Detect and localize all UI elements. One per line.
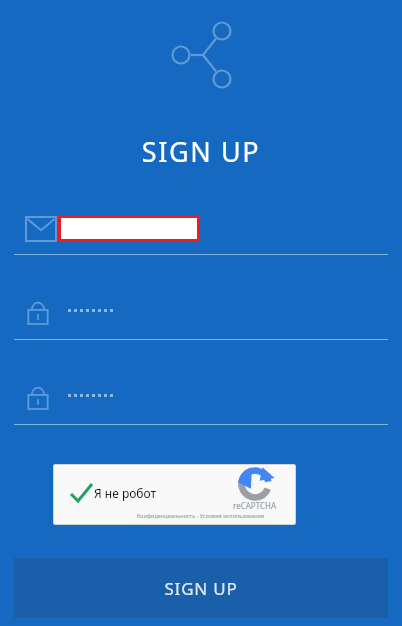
button[interactable]: SIGN UP bbox=[14, 558, 388, 618]
button[interactable]: Password bbox=[14, 375, 388, 424]
other: Password bbox=[27, 384, 49, 410]
button[interactable]: Email bbox=[14, 205, 388, 255]
staticText: SIGN UP bbox=[0, 133, 402, 170]
button[interactable]: Я не робот bbox=[53, 464, 296, 525]
button[interactable]: Password bbox=[14, 290, 388, 339]
other: Password bbox=[27, 299, 49, 325]
other: reCAPTCHA bbox=[240, 470, 270, 498]
other: App logo bbox=[166, 14, 238, 96]
staticText: Конфиденциальность - Условия использован… bbox=[137, 512, 265, 519]
other: Email bbox=[26, 217, 56, 241]
staticText: Я не робот bbox=[94, 485, 157, 501]
staticText: reCAPTCHA bbox=[233, 500, 277, 511]
staticText: SIGN UP bbox=[164, 577, 238, 600]
